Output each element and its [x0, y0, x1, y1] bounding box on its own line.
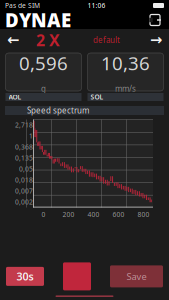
staticText: 0,007 [15, 187, 33, 195]
button[interactable]: Previous [0, 29, 26, 51]
staticText: Speed spectrum [27, 105, 89, 116]
staticText: 600 [112, 210, 124, 219]
staticText: Pas de SIM [5, 1, 40, 10]
button[interactable]: Start measurement [63, 262, 91, 290]
staticText: 800 [137, 210, 149, 219]
staticText: SOL [90, 93, 103, 101]
staticText: AOL [8, 93, 21, 101]
staticText: ← [7, 32, 19, 48]
staticText: 0 [41, 210, 45, 219]
staticText: 0,002 [15, 198, 33, 206]
staticText: → [150, 32, 162, 48]
staticText: 0,018 [15, 176, 33, 184]
button[interactable]: 30s [6, 267, 44, 286]
staticText: Save [126, 270, 146, 283]
staticText: default [93, 35, 120, 45]
staticText: 0,135 [15, 154, 33, 162]
button[interactable]: Next [143, 29, 169, 51]
staticText: 2,718 [15, 121, 33, 129]
button[interactable]: Session [146, 11, 164, 29]
staticText: 0,368 [15, 143, 33, 151]
staticText: 10,36 [101, 50, 150, 75]
staticText: 400 [87, 210, 99, 219]
button[interactable]: Save [110, 265, 163, 287]
staticText: 0,596 [19, 50, 68, 75]
staticText: 0,05 [19, 165, 33, 173]
staticText: 200 [62, 210, 74, 219]
staticText: mm/s [115, 83, 136, 94]
staticText: g [41, 83, 46, 94]
staticText: 1 [29, 132, 33, 140]
staticText: 2 X [36, 29, 60, 51]
staticText: 30s [16, 269, 33, 283]
staticText: DYNAE [5, 8, 71, 32]
staticText: 11:06 [87, 1, 105, 10]
